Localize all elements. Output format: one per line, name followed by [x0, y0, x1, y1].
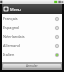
other: Language	[3, 6, 9, 12]
staticText: Annuler	[26, 64, 38, 68]
button[interactable]: Espagnol	[2, 23, 62, 32]
button[interactable]: Language	[2, 4, 62, 14]
staticText: Italien	[3, 52, 55, 57]
button[interactable]: Néerlandais	[2, 32, 62, 41]
staticText: Français	[3, 16, 55, 21]
button[interactable]: Allemand	[2, 41, 62, 50]
staticText: Néerlandais	[3, 34, 55, 39]
button[interactable]: Italien	[2, 50, 62, 59]
button[interactable]: Français	[2, 14, 62, 23]
button[interactable]: Annuler	[3, 64, 61, 68]
staticText: Menu	[10, 7, 21, 12]
staticText: Espagnol	[3, 25, 55, 30]
staticText: Allemand	[3, 43, 55, 48]
